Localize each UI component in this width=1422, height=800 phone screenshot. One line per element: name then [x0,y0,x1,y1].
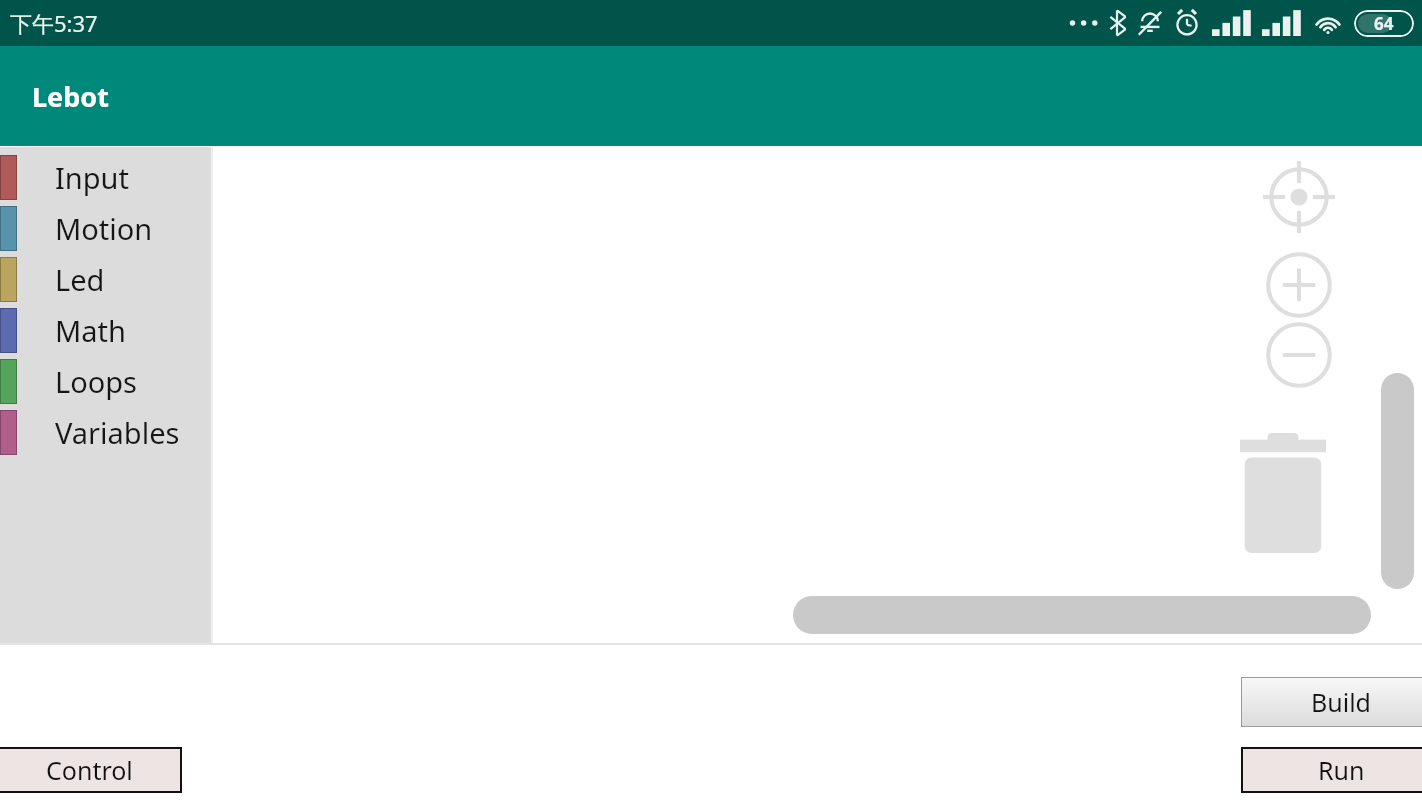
button[interactable]: Control [0,747,182,793]
staticText: 下午5:37 [10,8,98,38]
button[interactable]: Run [1241,747,1422,793]
staticText: Build [1311,685,1371,719]
staticText: 64 [1374,12,1394,35]
staticText: Motion [55,209,153,248]
button[interactable]: Led [0,254,211,305]
button[interactable]: Input [0,152,211,203]
button[interactable]: Build [1241,677,1422,727]
staticText: Input [55,158,129,197]
staticText: Run [1318,753,1365,787]
staticText: Lebot [32,78,109,115]
button[interactable]: Delete [1240,433,1326,553]
staticText: Led [55,260,105,299]
staticText: Control [46,753,133,787]
button[interactable]: Motion [0,203,211,254]
button[interactable]: Loops [0,356,211,407]
button[interactable]: Zoom in [1264,250,1334,320]
button[interactable]: Zoom out [1264,320,1334,390]
button[interactable]: Variables [0,407,211,458]
staticText: Loops [55,362,138,401]
button[interactable]: Center view [1263,161,1335,233]
button[interactable]: Math [0,305,211,356]
staticText: Variables [55,413,180,452]
staticText: Math [55,311,126,350]
